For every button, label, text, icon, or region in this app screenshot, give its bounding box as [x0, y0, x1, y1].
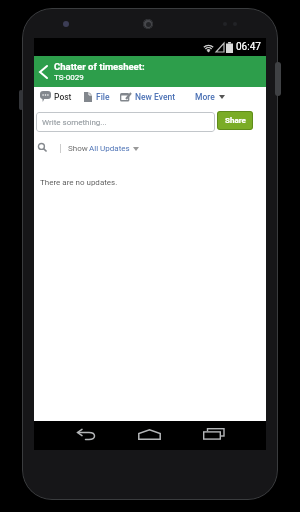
button[interactable]: New Event — [120, 90, 176, 103]
button[interactable]: Post — [40, 90, 72, 103]
staticText: File — [96, 92, 110, 102]
button[interactable] — [138, 429, 161, 440]
staticText: 06:47 — [236, 41, 261, 53]
staticText: New Event — [135, 92, 176, 102]
staticText: Write something... — [42, 118, 107, 127]
button[interactable]: Share — [217, 111, 253, 130]
staticText: All Updates — [89, 144, 130, 153]
staticText: There are no updates. — [40, 178, 118, 187]
staticText: Show — [68, 144, 88, 153]
button[interactable]: File — [84, 90, 110, 103]
button[interactable]: All Updates — [89, 144, 139, 153]
button[interactable] — [76, 429, 96, 440]
button[interactable] — [203, 428, 225, 440]
staticText: Share — [225, 116, 246, 125]
staticText: Post — [54, 92, 72, 102]
staticText: More — [195, 92, 215, 102]
button[interactable]: Write something... — [36, 112, 215, 132]
staticText: Chatter of timesheet: — [54, 61, 145, 72]
button[interactable] — [38, 143, 47, 152]
button[interactable]: Chatter of timesheet: — [34, 56, 266, 87]
staticText: TS-0029 — [54, 73, 84, 82]
button[interactable]: More — [195, 90, 225, 103]
